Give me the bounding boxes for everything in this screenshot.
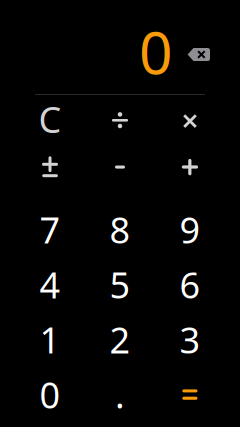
button[interactable]: Delete [187,48,210,61]
button[interactable]: Plus [155,143,225,191]
staticText: C [38,95,61,143]
button[interactable]: 5 [85,257,155,312]
staticText: 7 [39,206,60,253]
button[interactable]: Equals [155,367,225,422]
button[interactable]: 4 [15,257,85,312]
staticText: 2 [109,316,130,363]
staticText: 5 [109,261,130,308]
button[interactable]: Clear [15,95,85,143]
button[interactable]: Decimal point [85,367,155,422]
staticText: . [115,371,125,418]
staticText: 4 [39,261,60,308]
button[interactable]: 0 [15,367,85,422]
button[interactable]: Divide [85,95,155,143]
button[interactable]: Minus [85,143,155,191]
staticText: 3 [179,316,200,363]
button[interactable]: 6 [155,257,225,312]
button[interactable]: 1 [15,312,85,367]
staticText: 0 [39,371,60,418]
button[interactable]: Plus minus [15,143,85,191]
button[interactable]: 7 [15,202,85,257]
staticText: 9 [179,206,200,253]
staticText: 0 [139,12,173,90]
staticText: 6 [179,261,200,308]
button[interactable]: Multiply [155,95,225,143]
staticText: 1 [39,316,60,363]
button[interactable]: 2 [85,312,155,367]
button[interactable]: 3 [155,312,225,367]
button[interactable]: 8 [85,202,155,257]
staticText: 8 [109,206,130,253]
button[interactable]: 9 [155,202,225,257]
